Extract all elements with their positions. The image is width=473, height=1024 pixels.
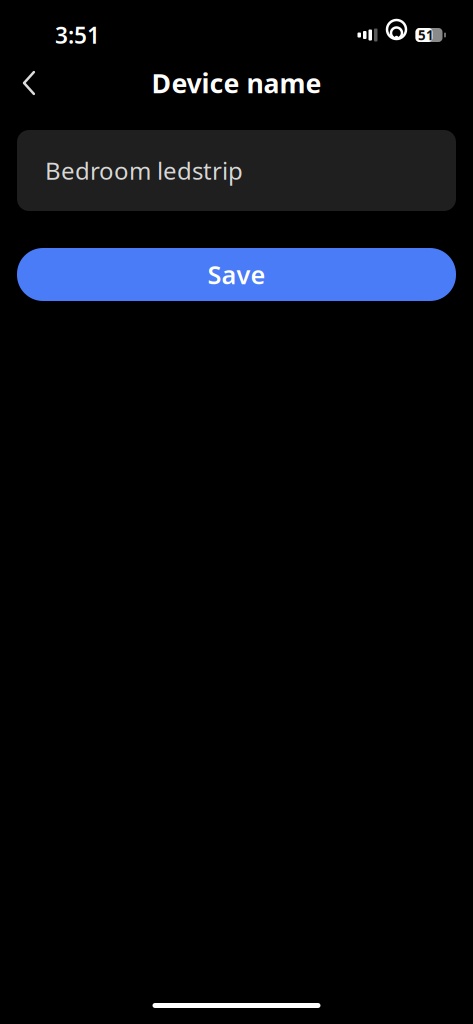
staticText: Save	[207, 258, 265, 291]
staticText: 51	[418, 26, 434, 44]
button[interactable]: Save	[17, 248, 456, 301]
staticText: Bedroom ledstrip	[45, 155, 243, 186]
staticText: 3:51	[55, 20, 100, 50]
staticText: Device name	[151, 65, 321, 101]
button[interactable]: Back	[6, 60, 52, 106]
